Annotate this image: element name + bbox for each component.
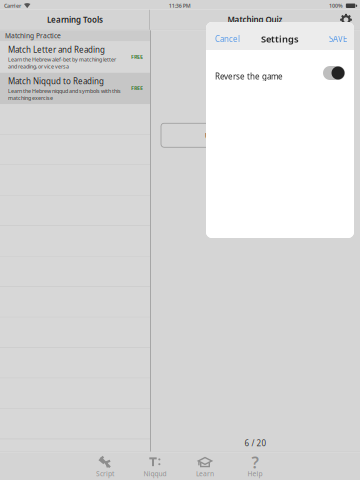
staticText: Learn	[196, 469, 214, 478]
button[interactable]: Match Letter and Reading	[0, 41, 150, 73]
staticText: Learn the Hebrew alef-bet by matching le…	[8, 56, 116, 70]
button[interactable]: Cancel	[206, 22, 240, 50]
staticText: Matching Quiz	[227, 14, 282, 25]
staticText: SAVE	[329, 34, 347, 44]
button[interactable]: Learn	[180, 453, 230, 480]
staticText: Script	[96, 469, 114, 478]
button[interactable]: Match Niqqud to Reading	[0, 73, 150, 104]
button[interactable]: Reverse the game	[206, 61, 354, 89]
staticText: Niqqud	[143, 469, 166, 478]
staticText: Carrier	[4, 2, 21, 9]
staticText: Learning Tools	[47, 14, 103, 25]
button[interactable]: ?	[230, 453, 280, 480]
staticText: Match Niqqud to Reading	[8, 76, 104, 86]
staticText: ?	[251, 452, 258, 473]
staticText: FREE	[131, 53, 143, 60]
button[interactable]: SAVE	[329, 22, 354, 50]
staticText: Cancel	[215, 34, 240, 44]
button[interactable]: ס	[161, 123, 254, 147]
button[interactable]: Settings	[340, 14, 352, 26]
button[interactable]: Script	[80, 453, 130, 480]
staticText: 11:36 PM	[169, 2, 191, 9]
staticText: ס	[204, 129, 211, 141]
staticText: Settings	[261, 33, 299, 45]
button[interactable]: Niqqud	[130, 453, 180, 480]
staticText: 6 / 20	[244, 438, 266, 448]
staticText: Matching Practice	[5, 31, 61, 40]
staticText: Learn the Hebrew niqqud and symbols with…	[8, 87, 121, 102]
staticText: Help	[247, 469, 262, 478]
staticText: FREE	[131, 85, 143, 92]
staticText: Match Letter and Reading	[8, 44, 105, 55]
staticText: 100%	[329, 2, 343, 9]
staticText: Reverse the game	[215, 71, 283, 82]
